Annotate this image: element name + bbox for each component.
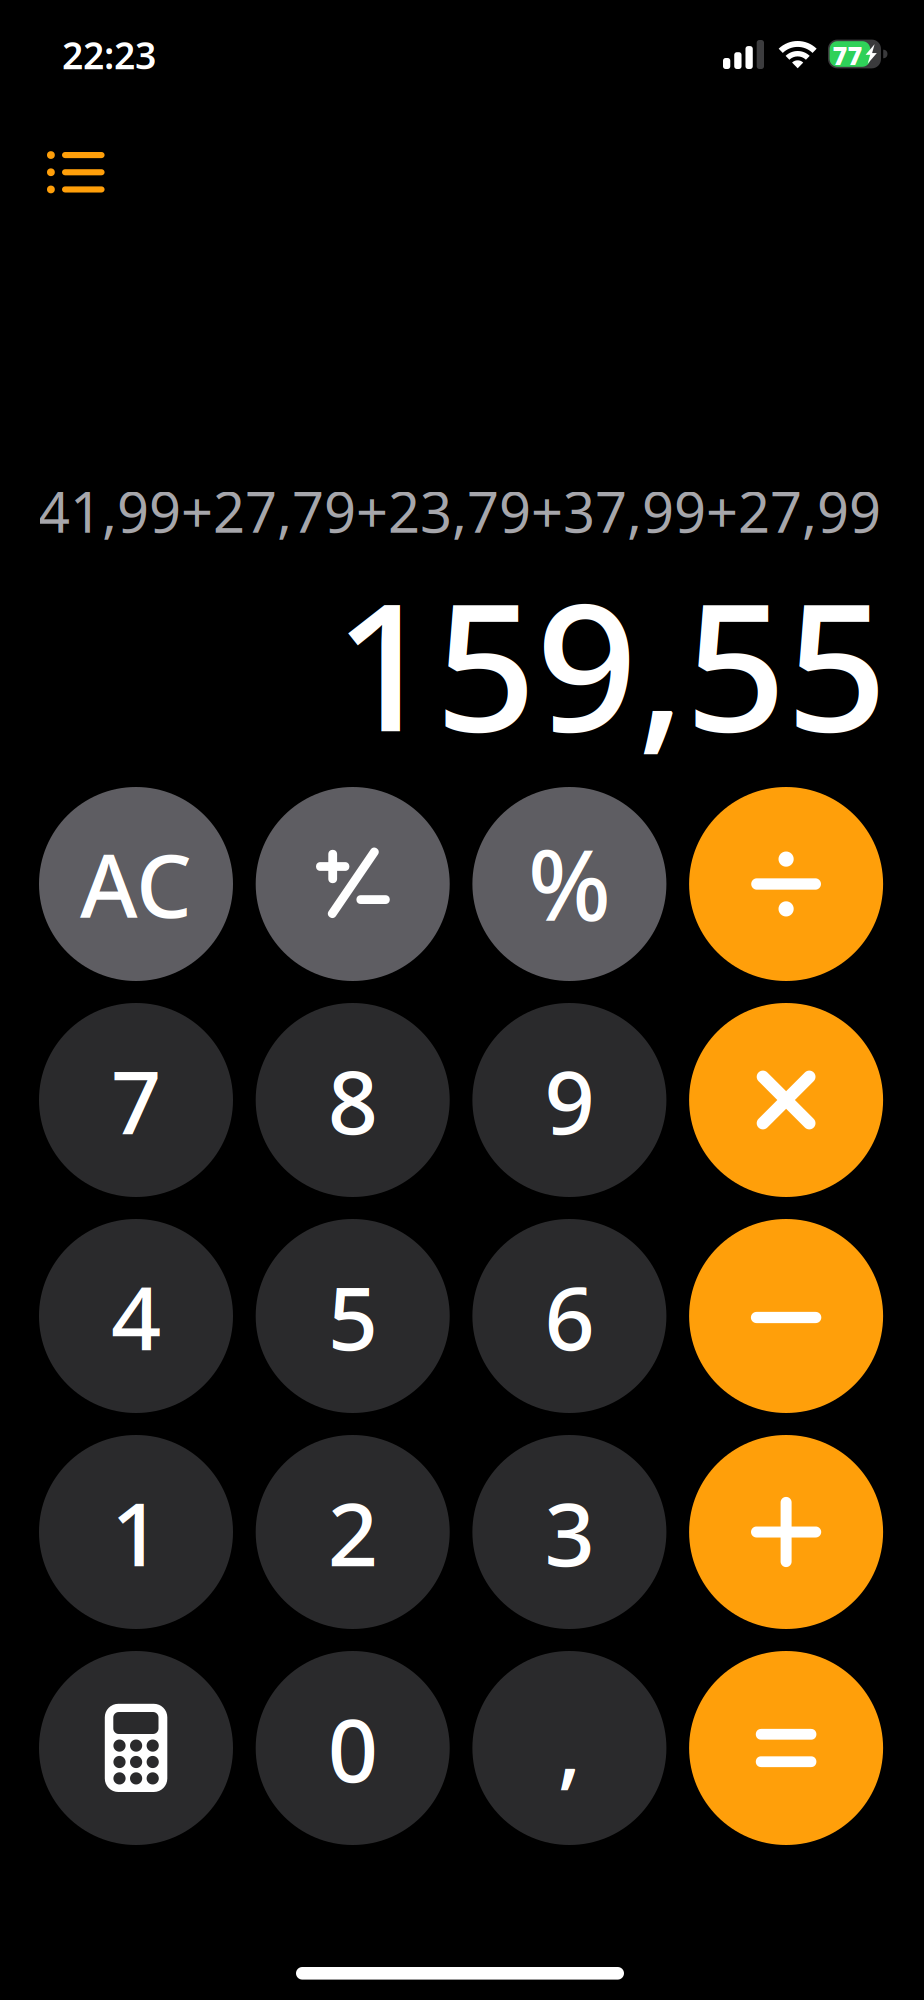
- button[interactable]: Minus: [689, 1219, 883, 1413]
- button[interactable]: 8: [256, 1003, 450, 1197]
- button[interactable]: Divide: [689, 787, 883, 981]
- staticText: 159,55: [334, 545, 887, 780]
- staticText: 0: [328, 1690, 378, 1806]
- staticText: 1: [111, 1474, 161, 1590]
- button[interactable]: 1: [39, 1435, 233, 1629]
- staticText: 2: [328, 1474, 378, 1590]
- button[interactable]: Plus: [689, 1435, 883, 1629]
- staticText: 441,99+27,79+23,79+37,99+27,99: [6, 474, 881, 548]
- staticText: 8: [328, 1042, 378, 1158]
- button[interactable]: 0: [256, 1651, 450, 1845]
- button[interactable]: AC: [39, 787, 233, 981]
- button[interactable]: 6: [472, 1219, 666, 1413]
- staticText: 4: [111, 1258, 161, 1374]
- staticText: 22:23: [62, 30, 156, 80]
- staticText: 3: [544, 1474, 594, 1590]
- button[interactable]: Equals: [689, 1651, 883, 1845]
- button[interactable]: Calculator: [39, 1651, 233, 1845]
- button[interactable]: History: [0, 126, 145, 218]
- button[interactable]: 9: [472, 1003, 666, 1197]
- button[interactable]: 2: [256, 1435, 450, 1629]
- button[interactable]: %: [472, 787, 666, 981]
- staticText: 77: [833, 38, 863, 72]
- staticText: %: [528, 818, 611, 948]
- staticText: 5: [328, 1258, 378, 1374]
- staticText: AC: [80, 825, 192, 942]
- staticText: 6: [544, 1258, 594, 1374]
- button[interactable]: Plus minus: [256, 787, 450, 981]
- button[interactable]: 5: [256, 1219, 450, 1413]
- button[interactable]: 4: [39, 1219, 233, 1413]
- staticText: 9: [544, 1042, 594, 1158]
- button[interactable]: ,: [472, 1651, 666, 1845]
- staticText: 7: [111, 1042, 161, 1158]
- button[interactable]: 7: [39, 1003, 233, 1197]
- button[interactable]: 3: [472, 1435, 666, 1629]
- button[interactable]: Multiply: [689, 1003, 883, 1197]
- staticText: ,: [557, 1687, 581, 1803]
